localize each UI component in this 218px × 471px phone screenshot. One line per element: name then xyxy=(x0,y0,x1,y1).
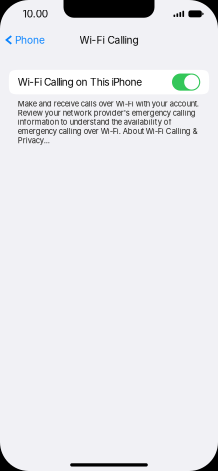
staticText: Phone xyxy=(15,34,45,46)
staticText: Wi-Fi Calling on This iPhone xyxy=(18,76,142,88)
staticText: 10.00 xyxy=(23,8,48,20)
staticText: Make and receive calls over Wi-Fi with y… xyxy=(18,99,199,145)
staticText: Wi-Fi Calling xyxy=(79,34,138,46)
button[interactable]: Phone xyxy=(0,29,45,51)
button[interactable]: Wi-Fi Calling on This iPhone xyxy=(9,70,209,94)
